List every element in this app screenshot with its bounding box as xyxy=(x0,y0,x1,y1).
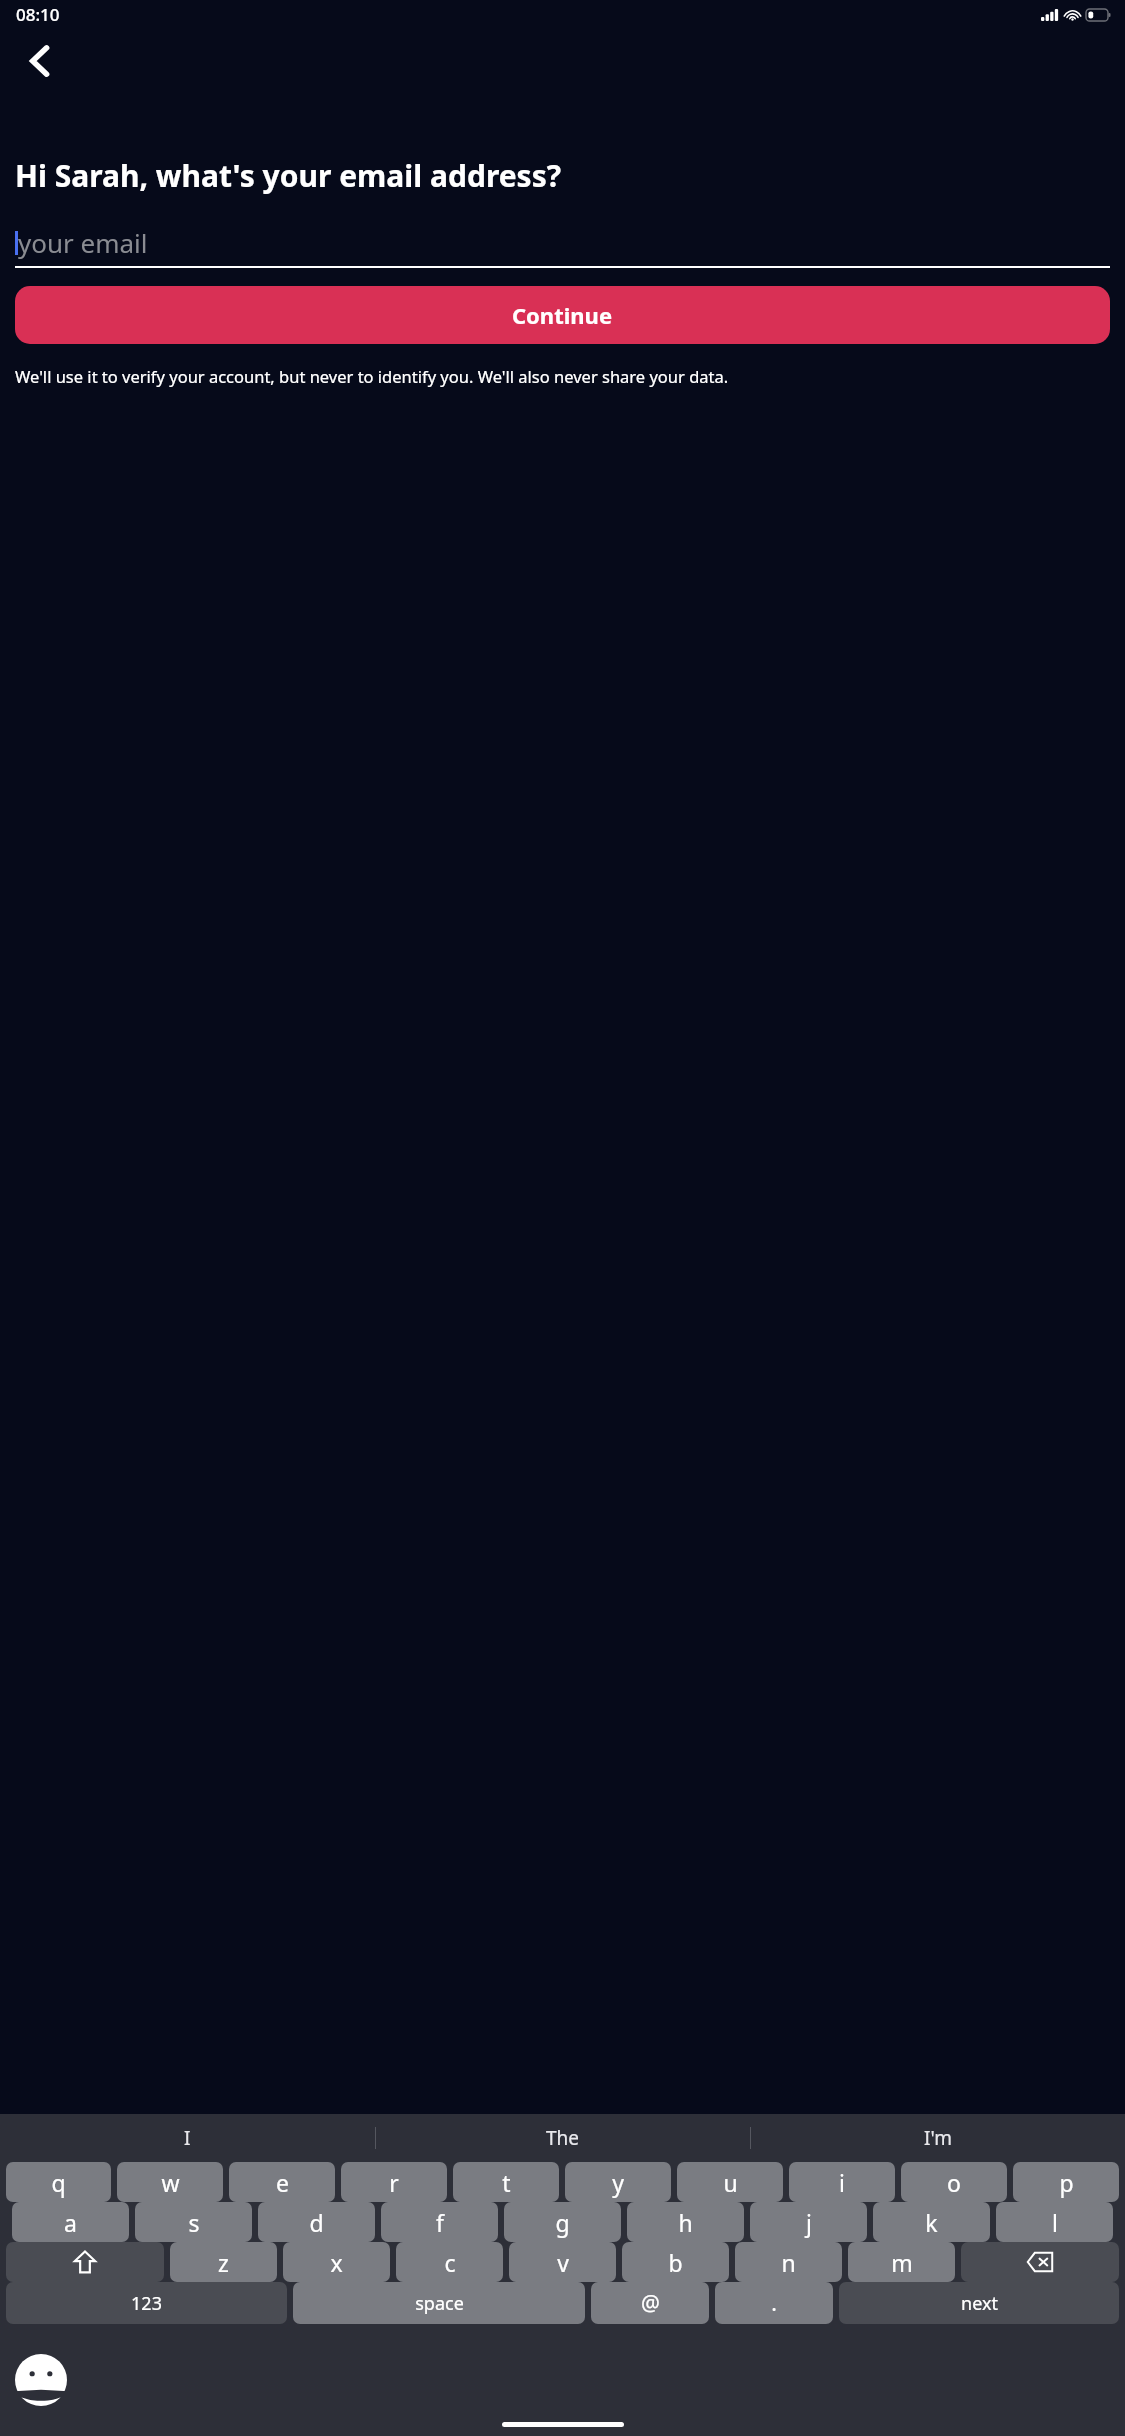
staticText: . xyxy=(771,2289,777,2318)
button[interactable]: c xyxy=(396,2242,503,2282)
staticText: h xyxy=(678,2207,693,2238)
staticText: The xyxy=(546,2125,580,2151)
staticText: We'll use it to verify your account, but… xyxy=(15,365,729,387)
button[interactable]: o xyxy=(901,2162,1007,2202)
button[interactable]: Back xyxy=(10,32,68,90)
button[interactable]: z xyxy=(170,2242,277,2282)
staticText: i xyxy=(839,2167,845,2198)
staticText: q xyxy=(51,2167,66,2198)
button[interactable]: your email xyxy=(15,218,1110,266)
button[interactable]: q xyxy=(6,2162,111,2202)
button[interactable]: n xyxy=(735,2242,842,2282)
staticText: c xyxy=(444,2247,456,2278)
staticText: t xyxy=(502,2167,511,2198)
staticText: m xyxy=(891,2247,913,2278)
staticText: l xyxy=(1052,2207,1058,2238)
staticText: s xyxy=(188,2207,200,2238)
staticText: g xyxy=(555,2207,570,2238)
staticText: I'm xyxy=(924,2125,952,2151)
button[interactable]: v xyxy=(509,2242,616,2282)
button[interactable]: b xyxy=(622,2242,729,2282)
button[interactable]: s xyxy=(135,2202,252,2242)
button[interactable]: The xyxy=(376,2114,750,2162)
staticText: y xyxy=(612,2167,624,2198)
button[interactable]: a xyxy=(12,2202,129,2242)
button[interactable]: . xyxy=(715,2282,833,2324)
staticText: next xyxy=(961,2291,998,2316)
button[interactable]: space xyxy=(293,2282,585,2324)
button[interactable]: w xyxy=(117,2162,223,2202)
button[interactable]: 123 xyxy=(6,2282,287,2324)
button[interactable]: p xyxy=(1013,2162,1119,2202)
staticText: Continue xyxy=(512,300,613,330)
button[interactable]: f xyxy=(381,2202,498,2242)
staticText: j xyxy=(806,2207,812,2238)
button[interactable]: e xyxy=(229,2162,335,2202)
button[interactable]: m xyxy=(848,2242,955,2282)
staticText: b xyxy=(668,2247,683,2278)
staticText: o xyxy=(947,2167,961,2198)
button[interactable]: Shift xyxy=(6,2242,164,2282)
staticText: r xyxy=(389,2167,399,2198)
button[interactable]: x xyxy=(283,2242,390,2282)
button[interactable]: Backspace xyxy=(961,2242,1119,2282)
button[interactable]: d xyxy=(258,2202,375,2242)
button[interactable]: Continue xyxy=(15,286,1110,344)
button[interactable]: j xyxy=(750,2202,867,2242)
staticText: 08:10 xyxy=(16,3,60,26)
staticText: I xyxy=(184,2125,191,2151)
staticText: 123 xyxy=(131,2291,162,2316)
staticText: e xyxy=(276,2167,289,2198)
button[interactable]: i xyxy=(789,2162,895,2202)
staticText: k xyxy=(925,2207,938,2238)
staticText: your email xyxy=(18,225,148,260)
staticText: z xyxy=(218,2247,229,2278)
staticText: Hi Sarah, what's your email address? xyxy=(15,155,562,196)
staticText: f xyxy=(436,2207,444,2238)
staticText: d xyxy=(309,2207,324,2238)
button[interactable]: y xyxy=(565,2162,671,2202)
staticText: space xyxy=(415,2291,464,2316)
staticText: a xyxy=(64,2207,77,2238)
button[interactable]: next xyxy=(839,2282,1119,2324)
button[interactable]: u xyxy=(677,2162,783,2202)
button[interactable]: k xyxy=(873,2202,990,2242)
staticText: w xyxy=(161,2167,180,2198)
button[interactable]: t xyxy=(453,2162,559,2202)
button[interactable]: r xyxy=(341,2162,447,2202)
staticText: v xyxy=(557,2247,569,2278)
button[interactable]: l xyxy=(996,2202,1113,2242)
staticText: n xyxy=(781,2247,796,2278)
staticText: u xyxy=(723,2167,738,2198)
staticText: @ xyxy=(641,2289,660,2318)
staticText: p xyxy=(1059,2167,1074,2198)
button[interactable]: I'm xyxy=(751,2114,1125,2162)
button[interactable]: Emoji xyxy=(14,2353,68,2407)
button[interactable]: @ xyxy=(591,2282,709,2324)
button[interactable]: h xyxy=(627,2202,744,2242)
staticText: x xyxy=(330,2247,343,2278)
button[interactable]: g xyxy=(504,2202,621,2242)
button[interactable]: I xyxy=(0,2114,375,2162)
